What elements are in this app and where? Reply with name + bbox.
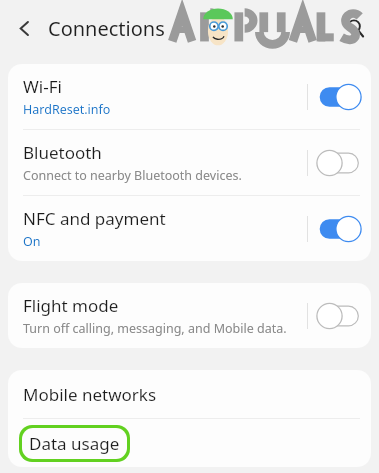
button[interactable]: Toggle off [316,302,362,330]
button[interactable]: NFC and payment [8,196,371,261]
staticText: Wi-Fi [23,75,62,98]
staticText: Turn off calling, messaging, and Mobile … [23,320,287,337]
button[interactable]: Wi-Fi [8,64,371,129]
staticText: Connections [48,15,165,42]
staticText: NFC and payment [23,207,166,230]
staticText: HardReset.info [23,101,111,118]
staticText: Connect to nearby Bluetooth devices. [23,167,242,184]
button[interactable]: Search [331,4,379,52]
staticText: On [23,233,41,250]
staticText: Data usage [29,432,120,455]
staticText: Mobile networks [23,383,157,406]
button[interactable]: Data usage [8,419,371,467]
button[interactable]: Toggle on [316,83,362,111]
staticText: Flight mode [23,294,119,317]
button[interactable]: Flight mode [8,283,371,348]
button[interactable]: Toggle on [316,215,362,243]
button[interactable]: Toggle off [316,149,362,177]
button[interactable]: Mobile networks [8,370,371,418]
button[interactable]: Bluetooth [8,130,371,195]
button[interactable]: Back [0,4,48,52]
staticText: Bluetooth [23,141,102,164]
